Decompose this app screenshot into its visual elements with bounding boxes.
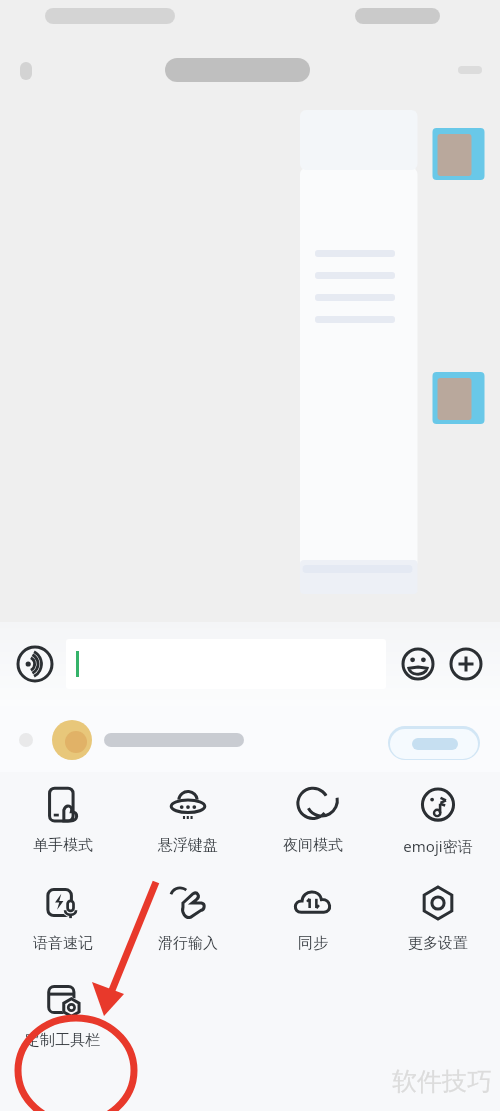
staticText: 滑行输入	[158, 934, 218, 953]
button[interactable]: 悬浮键盘	[125, 780, 250, 859]
staticText: 悬浮键盘	[158, 836, 218, 855]
staticText: emoji密语	[403, 836, 473, 856]
staticText: 夜间模式	[283, 836, 343, 855]
button[interactable]: 更多设置	[375, 878, 500, 957]
staticText: 更多设置	[408, 934, 468, 953]
button[interactable]: emoji密语	[375, 780, 500, 860]
staticText: 语音速记	[33, 934, 93, 953]
button[interactable]: Voice input	[12, 641, 58, 687]
button[interactable]: 夜间模式	[250, 780, 375, 859]
button[interactable]	[66, 639, 386, 689]
staticText: 同步	[298, 934, 328, 953]
staticText: 软件技巧	[392, 1066, 492, 1097]
button[interactable]: 定制工具栏	[0, 975, 125, 1054]
button[interactable]: 语音速记	[0, 878, 125, 957]
button[interactable]: More	[444, 642, 488, 686]
button[interactable]: 单手模式	[0, 780, 125, 859]
staticText: 定制工具栏	[25, 1031, 100, 1050]
button[interactable]: 同步	[250, 878, 375, 957]
button[interactable]: Emoji	[396, 642, 440, 686]
staticText: 单手模式	[33, 836, 93, 855]
button[interactable]: 滑行输入	[125, 878, 250, 957]
